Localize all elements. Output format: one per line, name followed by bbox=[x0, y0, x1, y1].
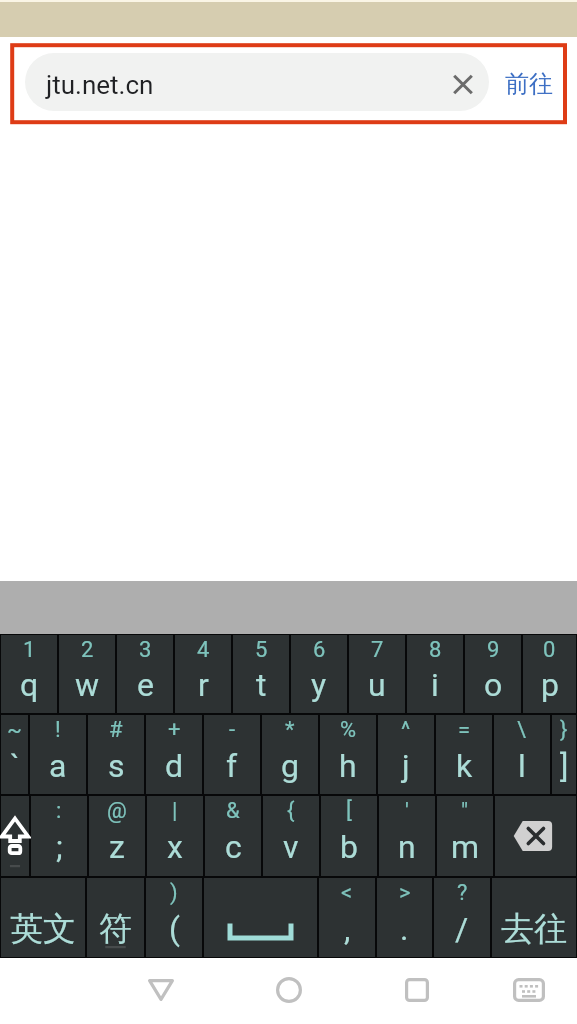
staticText: 9 bbox=[487, 637, 500, 663]
other: Space bbox=[204, 878, 317, 957]
button[interactable]: Back bbox=[124, 957, 197, 1023]
button[interactable]: ' bbox=[379, 796, 435, 876]
staticText: b bbox=[340, 828, 358, 866]
staticText: h bbox=[339, 747, 357, 785]
button[interactable]: # bbox=[88, 715, 144, 794]
button[interactable]: Recent apps bbox=[380, 957, 453, 1023]
staticText: \ bbox=[517, 717, 527, 743]
button[interactable]: { bbox=[263, 796, 319, 876]
button[interactable]: * bbox=[262, 715, 318, 794]
button[interactable]: 5 bbox=[233, 635, 289, 713]
staticText: j bbox=[402, 747, 410, 785]
staticText: jtu.net.cn bbox=[46, 70, 154, 100]
staticText: { bbox=[287, 798, 295, 824]
staticText: 4 bbox=[197, 637, 210, 663]
button[interactable]: = bbox=[436, 715, 492, 794]
staticText: 6 bbox=[313, 637, 326, 663]
button[interactable]: 符 bbox=[87, 878, 144, 957]
button[interactable]: 3 bbox=[117, 635, 173, 713]
staticText: ( bbox=[169, 910, 180, 948]
staticText: < bbox=[341, 880, 353, 906]
button[interactable]: 2 bbox=[59, 635, 115, 713]
button[interactable]: - bbox=[204, 715, 260, 794]
staticText: 8 bbox=[429, 637, 442, 663]
staticText: e bbox=[137, 666, 154, 704]
button[interactable]: } bbox=[552, 715, 576, 794]
button[interactable]: " bbox=[437, 796, 493, 876]
button[interactable]: & bbox=[205, 796, 261, 876]
staticText: 2 bbox=[81, 637, 94, 663]
staticText: q bbox=[20, 666, 39, 704]
button[interactable]: 6 bbox=[291, 635, 347, 713]
staticText: - bbox=[229, 717, 236, 743]
button[interactable]: 4 bbox=[175, 635, 231, 713]
button[interactable]: Switch keyboard bbox=[492, 957, 565, 1023]
button[interactable]: @ bbox=[89, 796, 145, 876]
staticText: ? bbox=[457, 880, 468, 906]
button[interactable]: 去往 bbox=[492, 878, 576, 957]
button[interactable]: \ bbox=[494, 715, 550, 794]
button[interactable]: | bbox=[147, 796, 203, 876]
staticText: z bbox=[109, 828, 125, 866]
staticText: ` bbox=[10, 747, 20, 785]
staticText: " bbox=[461, 798, 469, 824]
button[interactable]: 英文 bbox=[1, 878, 85, 957]
staticText: @ bbox=[107, 798, 127, 824]
button[interactable]: Backspace bbox=[495, 796, 576, 876]
button[interactable]: % bbox=[320, 715, 376, 794]
staticText: ] bbox=[560, 747, 569, 785]
button[interactable]: > bbox=[377, 878, 432, 957]
staticText: | bbox=[172, 798, 178, 824]
button[interactable]: 前往 bbox=[503, 60, 555, 108]
staticText: v bbox=[283, 828, 299, 866]
staticText: [ bbox=[346, 798, 352, 824]
staticText: 英文 bbox=[10, 908, 76, 950]
button[interactable]: ~ bbox=[1, 715, 28, 794]
button[interactable]: ? bbox=[434, 878, 490, 957]
staticText: + bbox=[168, 717, 181, 743]
button[interactable]: ^ bbox=[378, 715, 434, 794]
staticText: t bbox=[256, 666, 267, 704]
staticText: n bbox=[398, 828, 416, 866]
staticText: ! bbox=[55, 717, 61, 743]
button[interactable]: ) bbox=[146, 878, 202, 957]
staticText: % bbox=[340, 717, 357, 743]
button[interactable]: Shift bbox=[1, 796, 29, 876]
button[interactable]: Space bbox=[204, 878, 317, 957]
button[interactable]: 8 bbox=[407, 635, 463, 713]
staticText: = bbox=[458, 717, 471, 743]
other: Shift bbox=[1, 796, 29, 876]
staticText: ' bbox=[405, 798, 409, 824]
button[interactable]: 7 bbox=[349, 635, 405, 713]
staticText: ) bbox=[170, 880, 178, 906]
button[interactable]: Clear text bbox=[435, 56, 491, 112]
staticText: . bbox=[400, 910, 409, 948]
button[interactable]: jtu.net.cn bbox=[25, 53, 489, 111]
staticText: x bbox=[167, 828, 183, 866]
staticText: * bbox=[285, 717, 295, 743]
staticText: k bbox=[456, 747, 473, 785]
button[interactable]: ! bbox=[30, 715, 86, 794]
staticText: & bbox=[226, 798, 240, 824]
staticText: i bbox=[431, 666, 439, 704]
staticText: 符 bbox=[99, 908, 132, 950]
staticText: s bbox=[108, 747, 125, 785]
staticText: 1 bbox=[23, 637, 36, 663]
staticText: f bbox=[226, 747, 238, 785]
button[interactable]: Home bbox=[252, 957, 325, 1023]
staticText: c bbox=[225, 828, 242, 866]
staticText: 0 bbox=[543, 637, 556, 663]
button[interactable]: + bbox=[146, 715, 202, 794]
button[interactable]: 1 bbox=[1, 635, 57, 713]
staticText: # bbox=[109, 717, 123, 743]
staticText: m bbox=[451, 828, 480, 866]
staticText: / bbox=[455, 910, 469, 948]
staticText: ~ bbox=[7, 717, 22, 743]
button[interactable]: 0 bbox=[523, 635, 576, 713]
staticText: ; bbox=[56, 828, 63, 866]
staticText: 3 bbox=[139, 637, 152, 663]
button[interactable]: 9 bbox=[465, 635, 521, 713]
button[interactable]: [ bbox=[321, 796, 377, 876]
button[interactable]: : bbox=[31, 796, 87, 876]
button[interactable]: < bbox=[319, 878, 375, 957]
